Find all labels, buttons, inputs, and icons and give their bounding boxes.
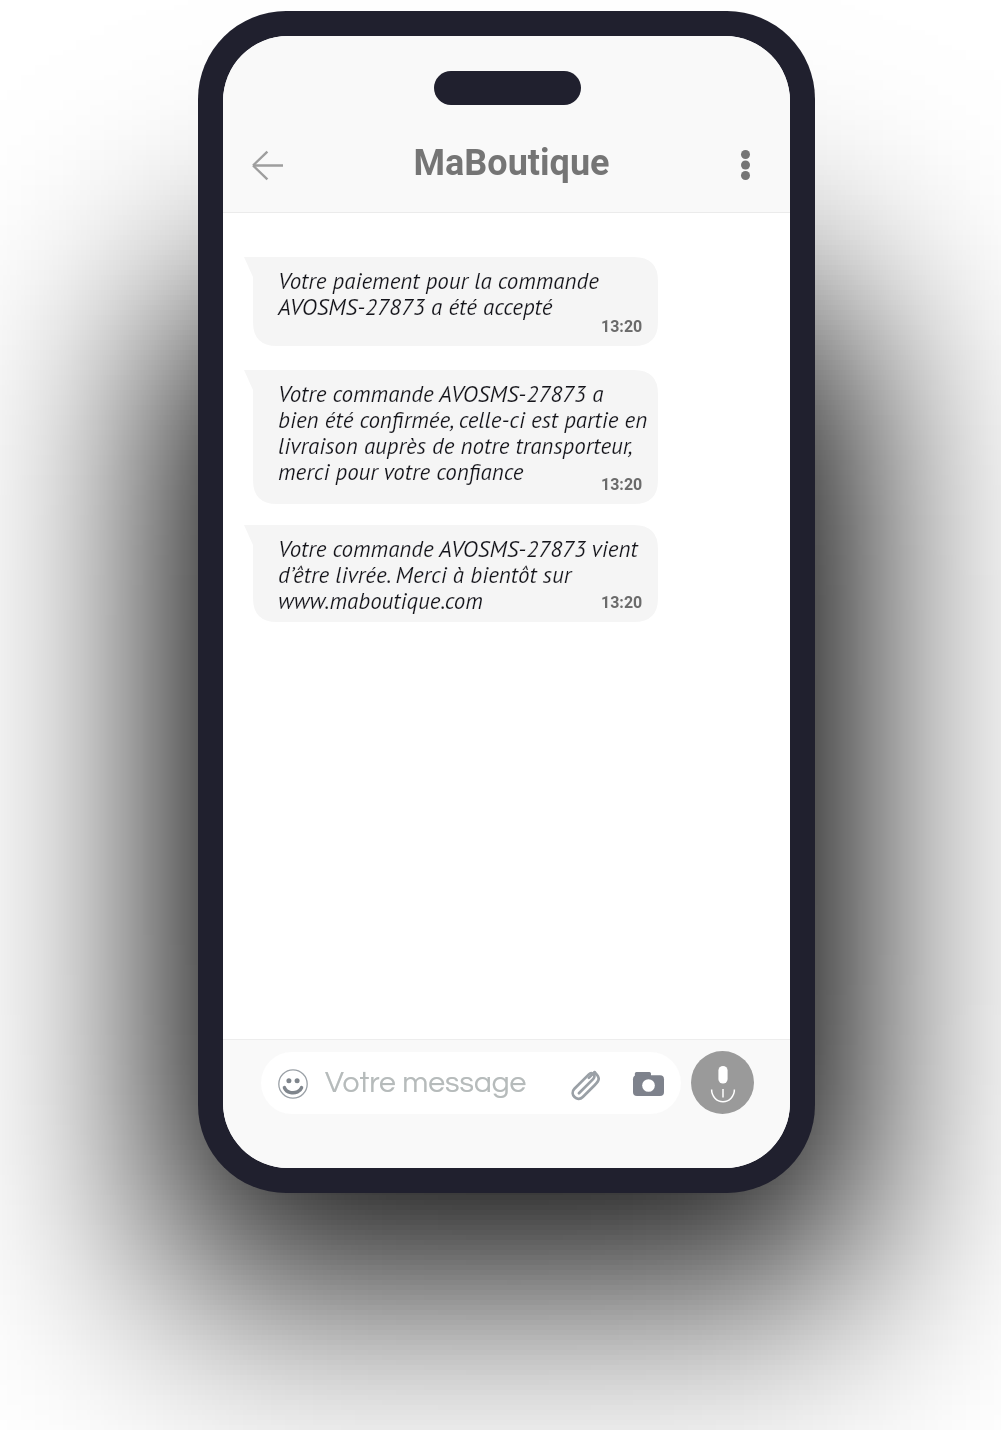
- staticText: MaBoutique: [304, 142, 719, 184]
- staticText: Votre commande AVOSMS-27873 a bien été c…: [278, 379, 648, 487]
- staticText: Votre commande AVOSMS-27873 vient d’être…: [278, 534, 638, 616]
- staticText: Votre paiement pour la commande AVOSMS-2…: [278, 266, 599, 322]
- button[interactable]: More options: [707, 123, 783, 199]
- button[interactable]: Emoji: [272, 1063, 313, 1104]
- button[interactable]: Votre commande AVOSMS-27873 vient d’être…: [253, 525, 658, 622]
- staticText: Votre message: [325, 1067, 616, 1098]
- button[interactable]: Votre commande AVOSMS-27873 a bien été c…: [253, 370, 658, 504]
- button[interactable]: Camera: [626, 1061, 670, 1105]
- button[interactable]: Votre paiement pour la commande AVOSMS-2…: [253, 257, 658, 346]
- staticText: 13:20: [601, 317, 643, 336]
- button[interactable]: Record voice message: [691, 1051, 754, 1114]
- staticText: 13:20: [601, 475, 643, 494]
- button[interactable]: Emoji: [261, 1052, 681, 1114]
- button[interactable]: Back: [230, 123, 306, 199]
- button[interactable]: Attach file: [563, 1061, 607, 1105]
- staticText: 13:20: [601, 593, 643, 612]
